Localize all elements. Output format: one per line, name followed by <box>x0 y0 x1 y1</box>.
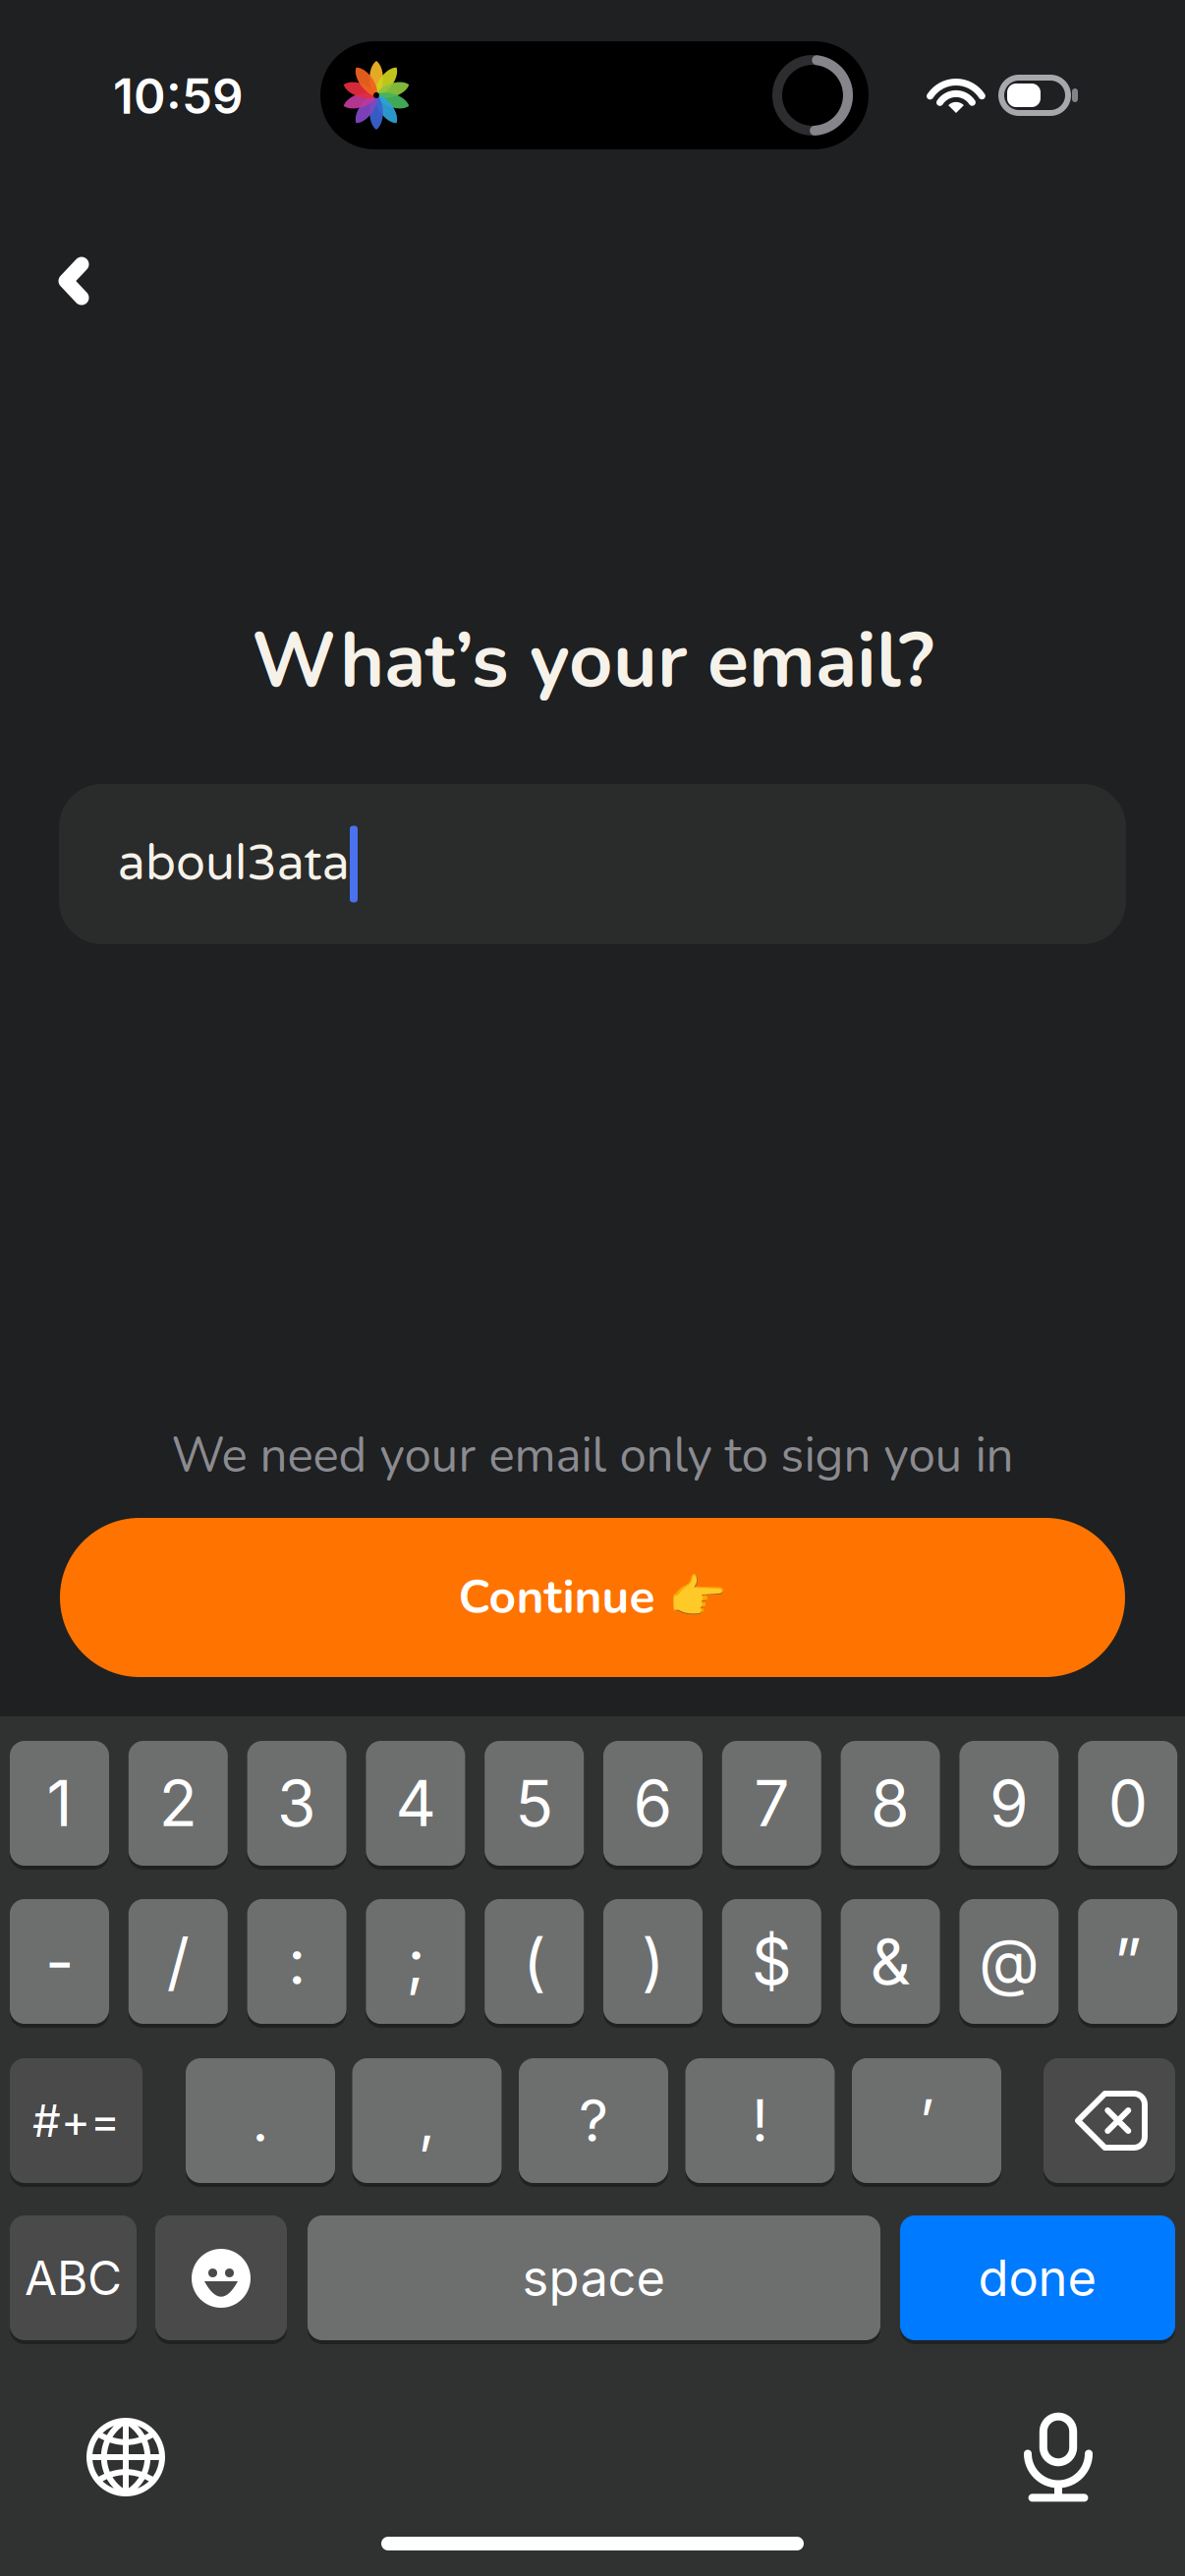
button[interactable]: Next keyboard <box>52 2383 199 2531</box>
staticText: ABC <box>25 2249 122 2306</box>
staticText: 10:59 <box>113 67 244 125</box>
button[interactable]: & <box>841 1899 940 2024</box>
button[interactable]: ; <box>366 1899 465 2024</box>
button[interactable]: , <box>352 2058 502 2183</box>
button[interactable]: ( <box>485 1899 584 2024</box>
button[interactable]: ’ <box>852 2058 1001 2183</box>
button[interactable]: ABC <box>10 2215 137 2340</box>
staticText: & <box>870 1923 910 1999</box>
button[interactable]: 1 <box>10 1741 109 1866</box>
button[interactable]: 7 <box>722 1741 821 1866</box>
staticText: 4 <box>395 1765 436 1841</box>
button[interactable]: $ <box>722 1899 821 2024</box>
button[interactable]: 8 <box>841 1741 940 1866</box>
button[interactable]: ) <box>603 1899 703 2024</box>
staticText: ; <box>406 1923 425 1999</box>
staticText: space <box>522 2248 666 2308</box>
staticText: What’s your email? <box>252 609 933 713</box>
button[interactable]: Continue 👉 <box>60 1518 1125 1677</box>
button[interactable]: Back <box>10 220 138 342</box>
button[interactable]: . <box>186 2058 335 2183</box>
staticText: ! <box>752 2086 768 2156</box>
button[interactable]: done <box>900 2215 1175 2340</box>
button[interactable]: / <box>129 1899 228 2024</box>
button[interactable]: 4 <box>366 1741 465 1866</box>
button[interactable]: #+= <box>10 2058 142 2183</box>
staticText: ( <box>523 1923 546 1999</box>
staticText: 5 <box>515 1765 553 1841</box>
staticText: 1 <box>47 1765 72 1841</box>
button[interactable]: 5 <box>485 1741 584 1866</box>
staticText: - <box>45 1923 74 1999</box>
staticText: ” <box>1114 1923 1141 1999</box>
staticText: , <box>419 2086 435 2156</box>
button[interactable]: 9 <box>959 1741 1059 1866</box>
button[interactable]: ! <box>685 2058 835 2183</box>
staticText: 9 <box>989 1765 1029 1841</box>
staticText: 6 <box>633 1765 673 1841</box>
staticText: : <box>288 1923 306 1999</box>
staticText: aboul3ata <box>118 835 350 893</box>
button[interactable]: Delete <box>1044 2058 1175 2183</box>
button[interactable]: Dictate <box>985 2383 1132 2531</box>
button[interactable]: ” <box>1078 1899 1177 2024</box>
staticText: 7 <box>754 1765 789 1841</box>
button[interactable]: 3 <box>247 1741 346 1866</box>
staticText: ? <box>579 2086 608 2156</box>
staticText: / <box>167 1923 189 1999</box>
staticText: 8 <box>871 1765 910 1841</box>
staticText: 0 <box>1108 1765 1147 1841</box>
staticText: @ <box>979 1923 1039 1999</box>
staticText: ’ <box>919 2086 934 2156</box>
button[interactable]: 0 <box>1078 1741 1177 1866</box>
button[interactable]: - <box>10 1899 109 2024</box>
button[interactable]: 2 <box>129 1741 228 1866</box>
button[interactable]: Emoji <box>155 2215 287 2340</box>
staticText: 2 <box>159 1765 197 1841</box>
staticText: #+= <box>32 2094 120 2148</box>
staticText: ) <box>642 1923 664 1999</box>
staticText: done <box>978 2248 1097 2308</box>
staticText: $ <box>751 1923 792 1999</box>
staticText: Continue 👉 <box>458 1565 727 1630</box>
button[interactable]: 6 <box>603 1741 703 1866</box>
staticText: . <box>252 2086 269 2156</box>
staticText: We need your email only to sign you in <box>171 1423 1014 1489</box>
button[interactable]: space <box>308 2215 880 2340</box>
button[interactable]: : <box>247 1899 346 2024</box>
staticText: 3 <box>277 1765 316 1841</box>
button[interactable]: @ <box>959 1899 1059 2024</box>
button[interactable]: ? <box>519 2058 668 2183</box>
